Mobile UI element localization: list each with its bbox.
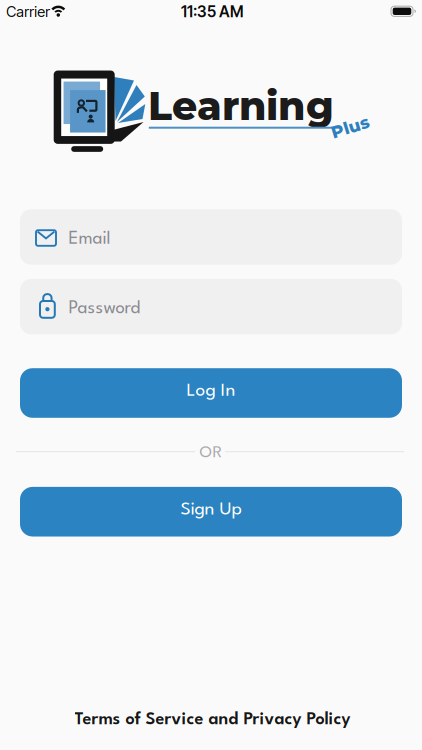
- button[interactable]: Log In: [20, 368, 402, 418]
- staticText: Plus: [330, 116, 369, 137]
- staticText: Terms of Service and Privacy Policy: [74, 711, 350, 728]
- staticText: OR: [199, 445, 222, 461]
- button[interactable]: Password: [20, 279, 402, 334]
- button[interactable]: Email: [20, 209, 402, 265]
- button[interactable]: Sign Up: [20, 487, 402, 536]
- staticText: Carrier: [6, 3, 50, 20]
- staticText: Log In: [186, 382, 235, 400]
- button[interactable]: Terms of Service and Privacy Policy: [74, 711, 350, 728]
- staticText: Sign Up: [180, 501, 241, 519]
- staticText: Email: [68, 231, 110, 248]
- staticText: Password: [68, 300, 140, 317]
- staticText: Learning: [148, 82, 334, 130]
- staticText: 11:35 AM: [181, 2, 243, 21]
